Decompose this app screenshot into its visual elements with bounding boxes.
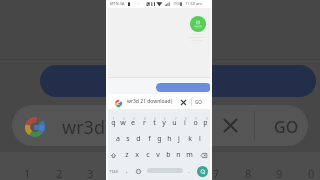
staticText: x [135, 150, 139, 160]
staticText: p [203, 118, 208, 128]
button[interactable]: s [123, 134, 133, 144]
button[interactable]: o [190, 118, 200, 128]
button[interactable]: . [184, 165, 194, 175]
staticText: GO [274, 116, 299, 138]
staticText: 15% [173, 1, 181, 6]
staticText: wr3d 21 download| [127, 98, 174, 105]
button[interactable]: j [174, 134, 184, 144]
staticText: t [153, 118, 156, 128]
staticText: 9 [276, 166, 283, 180]
button[interactable]: z [122, 150, 132, 160]
staticText: l [199, 134, 201, 144]
button[interactable]: Shift [108, 150, 118, 160]
button[interactable]: v [153, 150, 163, 160]
staticText: w [120, 118, 126, 128]
staticText: g [157, 134, 162, 144]
staticText: 9 [195, 117, 197, 121]
button[interactable]: y [159, 118, 169, 128]
staticText: i [184, 118, 186, 128]
button[interactable]: k [185, 134, 195, 144]
button[interactable]: i [180, 118, 190, 128]
staticText: 8 [245, 166, 252, 180]
button[interactable]: Backspace [199, 150, 209, 160]
button[interactable]: m [184, 150, 194, 160]
button[interactable]: g [154, 134, 164, 144]
button[interactable] [156, 83, 211, 92]
staticText: s [126, 134, 130, 144]
staticText: . [188, 167, 190, 174]
button[interactable]: a [113, 134, 123, 144]
button[interactable]: r [139, 118, 149, 128]
staticText: o [193, 118, 198, 128]
staticText: b [166, 150, 171, 160]
staticText: 2 [56, 166, 63, 180]
staticText: 6 [164, 117, 166, 121]
staticText: 1 [113, 117, 115, 121]
button[interactable]: n [173, 150, 183, 160]
button[interactable]: Clear [223, 118, 238, 133]
button[interactable]: u [169, 118, 179, 128]
button[interactable]: Space [147, 168, 183, 173]
button[interactable]: t [149, 118, 159, 128]
staticText: e [131, 118, 135, 128]
staticText: ?123 [109, 169, 118, 174]
button[interactable]: b [163, 150, 173, 160]
button[interactable]: Pause download [190, 16, 206, 32]
button[interactable]: Search [197, 166, 208, 177]
staticText: a [116, 134, 120, 144]
staticText: f [148, 134, 151, 144]
button[interactable]: d [133, 134, 143, 144]
staticText: 7 [175, 117, 177, 121]
button[interactable]: Clear [179, 98, 188, 107]
button[interactable]: l [195, 134, 205, 144]
staticText: 11:50 am [185, 1, 202, 6]
button[interactable]: ?123 [108, 166, 118, 176]
staticText: ⋯ [135, 1, 140, 6]
staticText: 1 [24, 166, 31, 180]
button[interactable]: x [132, 150, 142, 160]
staticText: q [111, 118, 116, 128]
staticText: GO [195, 99, 202, 105]
button[interactable]: f [144, 134, 154, 144]
staticText: 6 [182, 166, 189, 180]
staticText: 5 [154, 117, 156, 121]
staticText: m [186, 150, 193, 160]
staticText: h [167, 134, 172, 144]
staticText: c [146, 150, 150, 160]
button[interactable]: GO [194, 98, 203, 105]
button[interactable]: GO [274, 116, 299, 138]
button[interactable]: q [108, 118, 118, 128]
staticText: 3 [133, 117, 135, 121]
staticText: u [172, 118, 177, 128]
button[interactable]: p [200, 118, 210, 128]
staticText: 4 [144, 117, 146, 121]
staticText: 0 [308, 166, 315, 180]
staticText: n [176, 150, 181, 160]
staticText: j [178, 134, 180, 144]
staticText: 8 [185, 117, 187, 121]
staticText: 5 [150, 166, 157, 180]
staticText: v [156, 150, 160, 160]
staticText: r [143, 118, 146, 128]
staticText: y [162, 118, 166, 128]
button[interactable]: w [118, 118, 128, 128]
button[interactable]: h [164, 134, 174, 144]
button[interactable]: c [143, 150, 153, 160]
staticText: k [188, 134, 192, 144]
staticText: d [136, 134, 141, 144]
button[interactable]: Emoji [133, 166, 143, 176]
staticText: 3 [87, 166, 94, 180]
staticText: z [125, 150, 129, 160]
staticText: 0 [206, 117, 208, 121]
staticText: , [126, 167, 128, 174]
button[interactable]: , [122, 165, 132, 175]
staticText: wr3d 2 [62, 115, 120, 140]
staticText: 7 [213, 166, 220, 180]
staticText: MTN-SA [110, 1, 125, 6]
staticText: 2 [123, 117, 125, 121]
button[interactable]: e [128, 118, 138, 128]
